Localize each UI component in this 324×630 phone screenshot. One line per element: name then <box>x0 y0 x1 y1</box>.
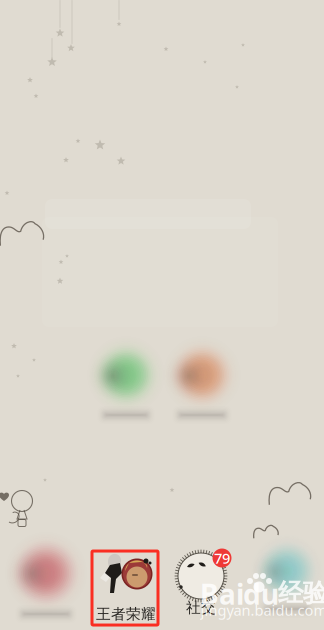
staticText: jingyan.baidu.com <box>200 600 324 620</box>
staticText: 经验 <box>278 577 324 608</box>
button[interactable]: App <box>88 344 164 428</box>
button[interactable]: Highlighted app 王者荣耀 <box>92 551 158 625</box>
staticText: 社交 <box>186 598 216 616</box>
button[interactable]: App <box>251 542 323 622</box>
staticText: 王者荣耀 <box>96 605 156 623</box>
staticText: 79 <box>214 548 230 568</box>
button[interactable]: App <box>164 344 240 428</box>
button[interactable]: 王者荣耀 <box>95 552 157 622</box>
button[interactable]: 79 <box>171 552 231 616</box>
staticText: du <box>243 575 279 613</box>
button[interactable]: App <box>7 541 85 627</box>
staticText: Bai <box>200 575 244 613</box>
